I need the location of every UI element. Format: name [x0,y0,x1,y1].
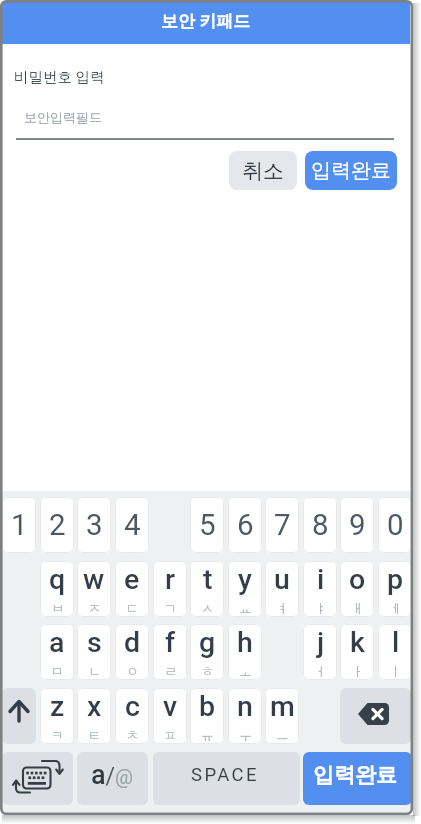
button[interactable]: t [190,561,224,617]
staticText: 2 [49,508,66,543]
button[interactable]: d [115,624,149,680]
button[interactable]: y [228,561,262,617]
staticText: ㄴ [88,663,101,679]
button[interactable]: u [265,561,299,617]
button[interactable]: p [378,561,412,617]
staticText: i [317,563,325,596]
button[interactable]: 0 [378,497,412,553]
button[interactable]: f [153,624,187,680]
button[interactable]: q [40,561,74,617]
staticText: a [49,626,65,659]
button[interactable]: g [190,624,224,680]
staticText: ㅑ [314,600,327,616]
button[interactable]: s [77,624,111,680]
staticText: ㅂ [51,600,64,616]
staticText: ㅣ [389,663,402,679]
staticText: ㅁ [51,663,64,679]
staticText: p [387,563,404,596]
staticText: a/@ [91,759,134,791]
staticText: SPACE [191,764,259,786]
button[interactable]: 3 [77,497,111,553]
button[interactable]: c [115,688,149,744]
staticText: f [165,626,176,659]
staticText: ㅛ [239,600,252,616]
staticText: 5 [199,508,216,543]
button[interactable]: x [77,688,111,744]
staticText: 7 [274,508,291,543]
staticText: 1 [11,508,28,543]
button[interactable]: SPACE [153,752,300,805]
staticText: z [50,690,65,723]
staticText: ㅐ [351,600,364,616]
button[interactable] [2,752,73,805]
staticText: j [317,626,325,659]
staticText: ㅍ [164,727,177,743]
button[interactable]: j [303,624,337,680]
button[interactable]: 9 [340,497,374,553]
staticText: h [237,626,253,659]
staticText: 취소 [242,158,284,184]
staticText: ㄷ [126,600,139,616]
button[interactable]: 2 [40,497,74,553]
staticText: u [274,563,290,596]
button[interactable]: 입력완료 [303,752,412,805]
button[interactable]: 5 [190,497,224,553]
staticText: ㄱ [164,600,177,616]
staticText: 입력완료 [313,762,397,788]
staticText: 0 [387,508,404,543]
button[interactable]: l [378,624,412,680]
staticText: t [203,563,213,596]
staticText: ㅏ [351,663,364,679]
staticText: y [238,563,252,596]
staticText: 8 [312,508,329,543]
staticText: ㅇ [126,663,139,679]
staticText: 보안입력필드 [24,109,102,125]
button[interactable]: b [190,688,224,744]
staticText: ㅈ [88,600,101,616]
staticText: x [87,690,102,723]
staticText: w [83,563,105,596]
button[interactable]: a [40,624,74,680]
staticText: ㅕ [276,600,289,616]
button[interactable] [2,688,36,744]
staticText: q [49,563,66,596]
button[interactable]: n [228,688,262,744]
staticText: l [392,626,400,659]
staticText: 3 [86,508,103,543]
button[interactable]: z [40,688,74,744]
staticText: g [199,626,216,659]
staticText: c [125,690,140,723]
button[interactable]: i [303,561,337,617]
button[interactable]: 8 [303,497,337,553]
button[interactable]: v [153,688,187,744]
staticText: ㅅ [201,600,214,616]
staticText: 4 [124,508,141,543]
button[interactable]: m [265,688,299,744]
staticText: ㅌ [88,727,101,743]
staticText: s [87,626,102,659]
staticText: ㄹ [164,663,177,679]
button[interactable]: e [115,561,149,617]
button[interactable]: 1 [2,497,36,553]
button[interactable]: a/@ [77,752,148,805]
button[interactable]: 보안 키패드 [2,2,410,44]
staticText: ㅡ [276,727,289,743]
staticText: ㅓ [314,663,327,679]
button[interactable]: w [77,561,111,617]
button[interactable]: o [340,561,374,617]
button[interactable]: k [340,624,374,680]
button[interactable]: h [228,624,262,680]
button[interactable]: 6 [228,497,262,553]
staticText: ㅜ [239,727,252,743]
staticText: 입력완료 [311,158,391,183]
staticText: 보안 키패드 [161,11,251,32]
button[interactable]: 입력완료 [305,151,397,190]
staticText: ㅋ [51,727,64,743]
button[interactable] [340,688,411,744]
button[interactable]: r [153,561,187,617]
button[interactable]: 7 [265,497,299,553]
staticText: ㅠ [201,727,214,743]
button[interactable]: 4 [115,497,149,553]
staticText: 6 [237,508,254,543]
button[interactable]: 취소 [229,151,297,190]
